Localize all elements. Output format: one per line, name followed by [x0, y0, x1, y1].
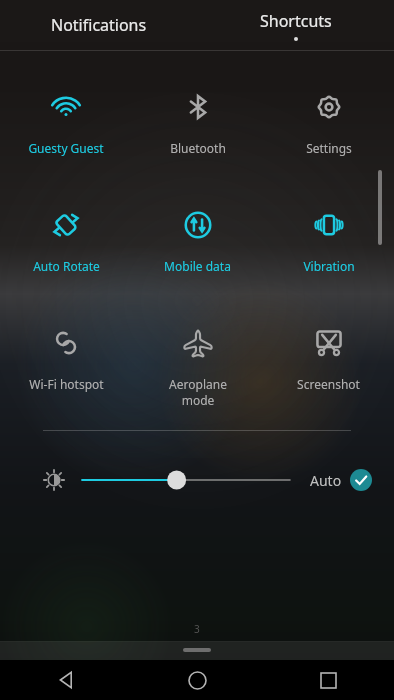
button[interactable]: Auto — [306, 469, 376, 491]
button[interactable]: Brightness — [38, 464, 70, 496]
button[interactable]: Bluetooth — [132, 76, 263, 186]
button[interactable]: Vibration — [263, 194, 394, 304]
button[interactable]: Notifications — [0, 0, 197, 50]
button[interactable]: Aeroplane mode — [132, 312, 263, 422]
staticText: Aeroplane mode — [169, 376, 227, 408]
button[interactable]: Screenshot — [263, 312, 394, 422]
staticText: Guesty Guest — [28, 140, 104, 156]
staticText: Vibration — [303, 258, 355, 274]
staticText: Auto Rotate — [33, 258, 100, 274]
button[interactable]: Home — [132, 660, 263, 700]
staticText: Screenshot — [297, 376, 360, 392]
button[interactable]: Auto Rotate — [0, 194, 132, 304]
button[interactable]: Shortcuts — [197, 0, 394, 50]
staticText: 3 — [194, 622, 200, 636]
button[interactable]: Mobile data — [132, 194, 263, 304]
staticText: Shortcuts — [260, 10, 332, 32]
button[interactable] — [183, 648, 211, 652]
staticText: Bluetooth — [170, 140, 226, 156]
button[interactable]: Back — [0, 660, 132, 700]
button[interactable]: Wi-Fi hotspot — [0, 312, 132, 422]
staticText: Mobile data — [164, 258, 231, 274]
button[interactable]: Recent apps — [263, 660, 394, 700]
staticText: Settings — [306, 140, 352, 156]
button[interactable]: Guesty Guest — [0, 76, 132, 186]
button[interactable]: Brightness slider — [82, 458, 298, 502]
staticText: Wi-Fi hotspot — [29, 376, 104, 392]
staticText: Auto — [310, 471, 342, 490]
staticText: Notifications — [51, 14, 147, 36]
button[interactable]: Settings — [263, 76, 394, 186]
